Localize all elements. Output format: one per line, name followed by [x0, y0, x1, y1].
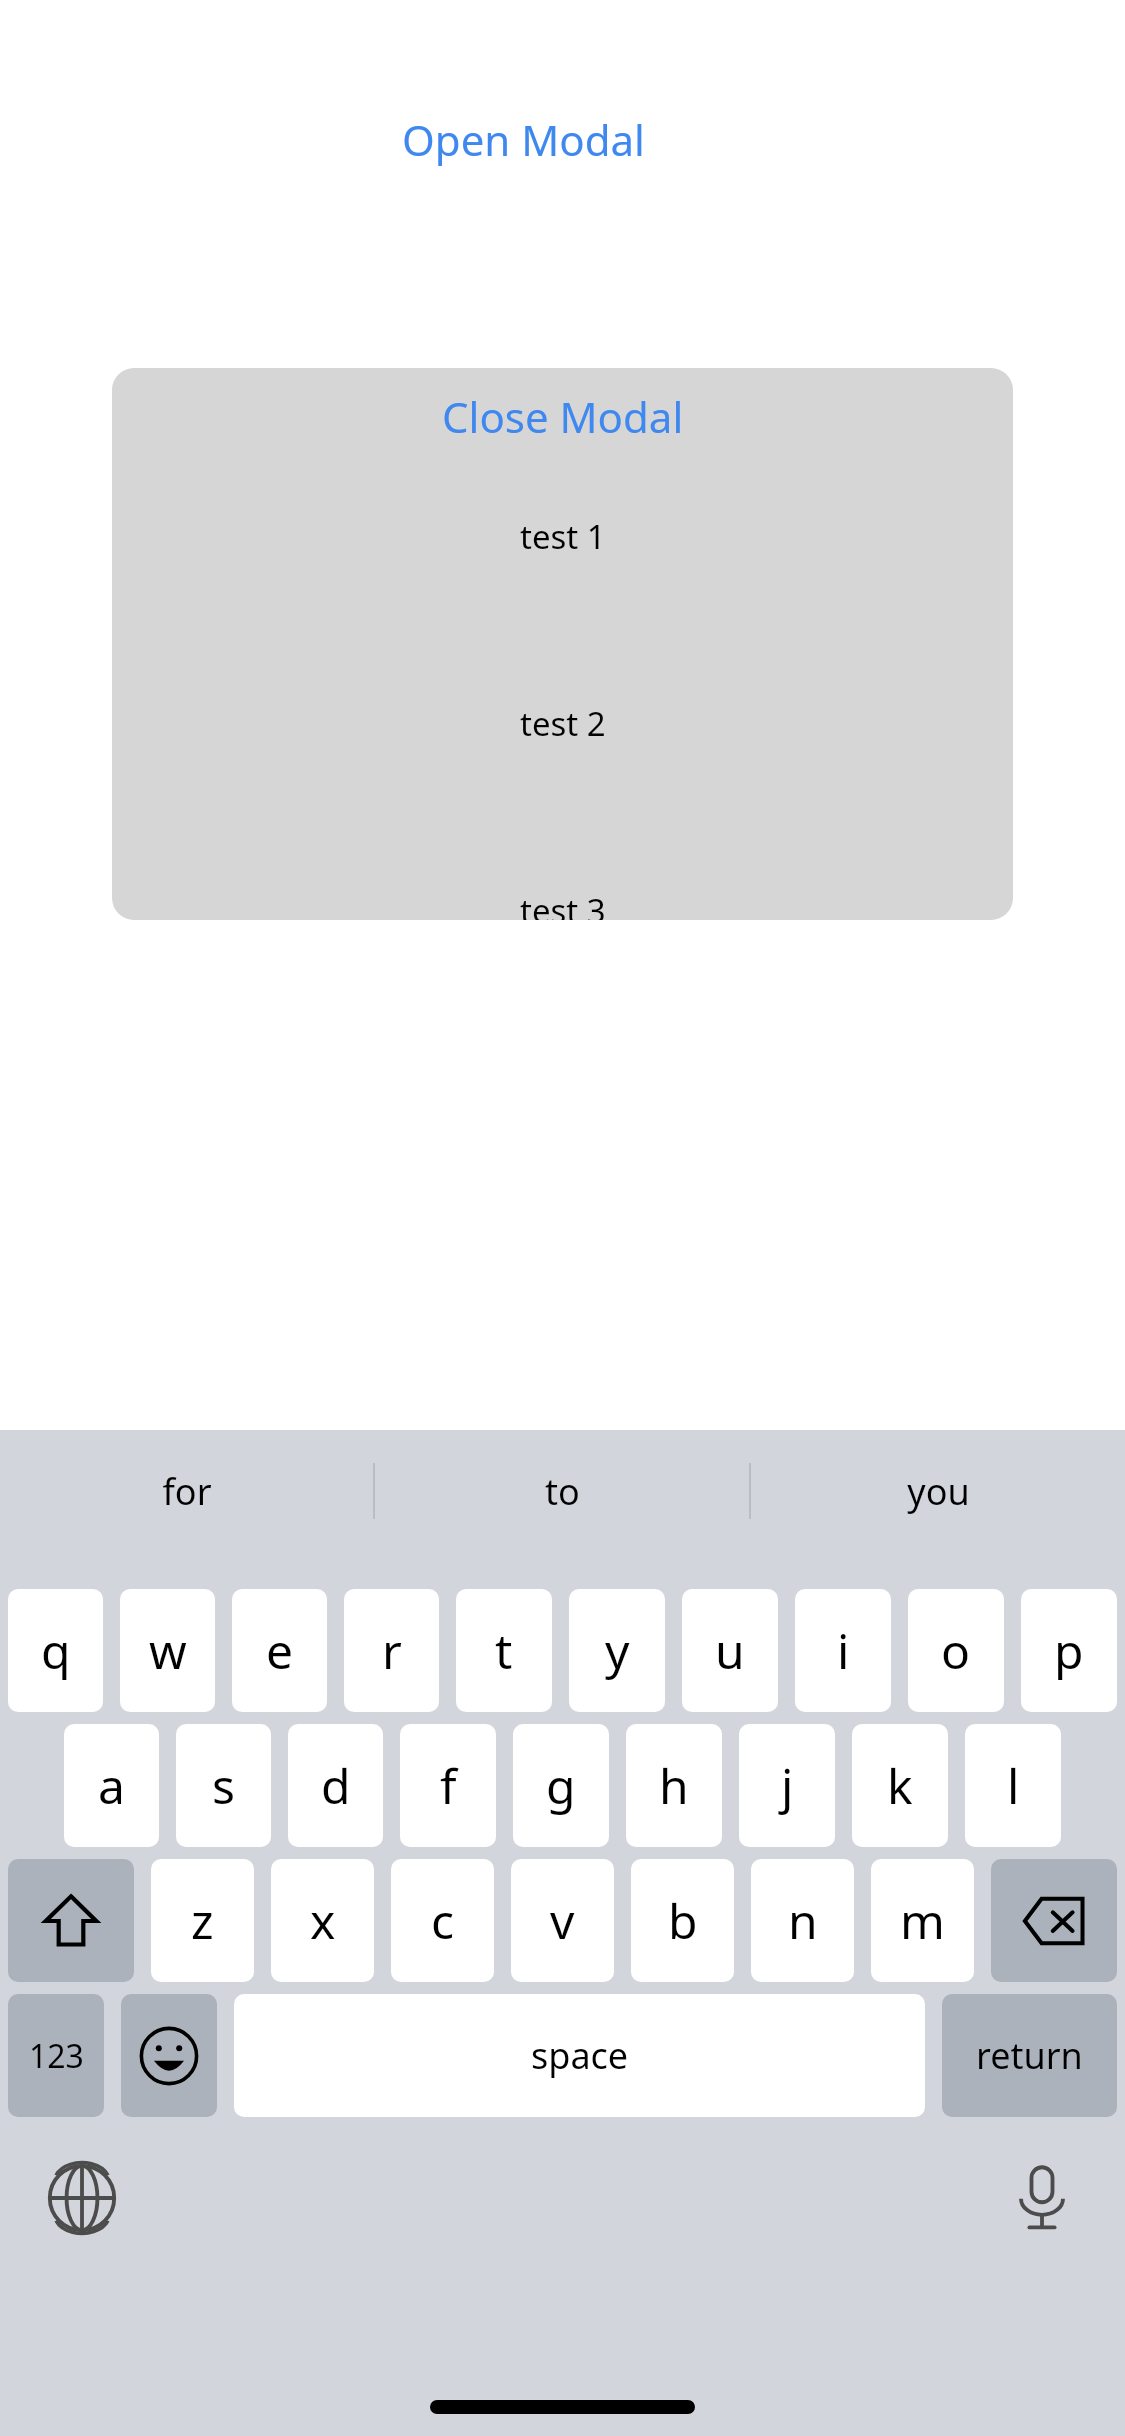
button[interactable]: Change keyboard	[40, 2156, 124, 2240]
staticText: g	[546, 1753, 576, 1818]
button[interactable]: p	[1021, 1589, 1117, 1712]
button[interactable]: n	[751, 1859, 854, 1982]
staticText: for	[162, 1467, 212, 1516]
staticText: test 1	[520, 514, 606, 559]
staticText: j	[781, 1753, 794, 1818]
staticText: return	[976, 2031, 1083, 2080]
button[interactable]: Open Modal	[390, 103, 657, 176]
button[interactable]: w	[120, 1589, 215, 1712]
button[interactable]: t	[456, 1589, 552, 1712]
staticText: r	[382, 1618, 402, 1683]
button[interactable]: for	[0, 1446, 373, 1536]
button[interactable]: Dictation	[1000, 2156, 1084, 2240]
staticText: x	[310, 1888, 336, 1953]
staticText: v	[550, 1888, 575, 1953]
staticText: to	[545, 1467, 580, 1516]
button[interactable]: b	[631, 1859, 734, 1982]
staticText: l	[1007, 1753, 1020, 1818]
button[interactable]: e	[232, 1589, 327, 1712]
button[interactable]: h	[626, 1724, 722, 1847]
staticText: q	[41, 1618, 71, 1683]
staticText: u	[715, 1618, 745, 1683]
button[interactable]: 123	[8, 1994, 104, 2117]
button[interactable]: i	[795, 1589, 891, 1712]
staticText: d	[321, 1753, 351, 1818]
staticText: y	[605, 1618, 630, 1683]
button[interactable]: Emoji	[121, 1994, 217, 2117]
staticText: Close Modal	[442, 388, 684, 445]
button[interactable]: space	[234, 1994, 925, 2117]
button[interactable]: Shift	[8, 1859, 134, 1982]
staticText: w	[149, 1618, 187, 1683]
button[interactable]: r	[344, 1589, 439, 1712]
staticText: test 3	[520, 888, 606, 920]
button[interactable]: g	[513, 1724, 609, 1847]
button[interactable]: c	[391, 1859, 494, 1982]
button[interactable]: y	[569, 1589, 665, 1712]
button[interactable]: you	[751, 1446, 1125, 1536]
staticText: p	[1054, 1618, 1084, 1683]
button[interactable]: a	[64, 1724, 159, 1847]
staticText: you	[907, 1467, 970, 1516]
staticText: a	[98, 1753, 125, 1818]
button[interactable]: Backspace	[991, 1859, 1117, 1982]
button[interactable]: x	[271, 1859, 374, 1982]
button[interactable]: to	[375, 1446, 749, 1536]
staticText: n	[788, 1888, 818, 1953]
staticText: 123	[29, 2034, 84, 2078]
staticText: s	[212, 1753, 235, 1818]
button[interactable]: f	[400, 1724, 496, 1847]
staticText: k	[887, 1753, 913, 1818]
staticText: f	[440, 1753, 457, 1818]
button[interactable]: m	[871, 1859, 974, 1982]
staticText: m	[900, 1888, 945, 1953]
button[interactable]: return	[942, 1994, 1117, 2117]
button[interactable]: q	[8, 1589, 103, 1712]
staticText: space	[531, 2031, 629, 2080]
button[interactable]: z	[151, 1859, 254, 1982]
staticText: z	[191, 1888, 214, 1953]
button[interactable]: v	[511, 1859, 614, 1982]
button[interactable]: o	[908, 1589, 1004, 1712]
button[interactable]: k	[852, 1724, 948, 1847]
staticText: o	[941, 1618, 971, 1683]
staticText: h	[659, 1753, 689, 1818]
staticText: Open Modal	[402, 111, 645, 168]
staticText: b	[668, 1888, 698, 1953]
staticText: t	[495, 1618, 513, 1683]
button[interactable]: s	[176, 1724, 271, 1847]
button[interactable]: l	[965, 1724, 1061, 1847]
staticText: i	[837, 1618, 850, 1683]
button[interactable]: Close Modal	[430, 380, 696, 453]
button[interactable]: j	[739, 1724, 835, 1847]
staticText: test 2	[520, 701, 606, 746]
button[interactable]: d	[288, 1724, 383, 1847]
button[interactable]: u	[682, 1589, 778, 1712]
staticText: e	[266, 1618, 294, 1683]
staticText: c	[431, 1888, 455, 1953]
